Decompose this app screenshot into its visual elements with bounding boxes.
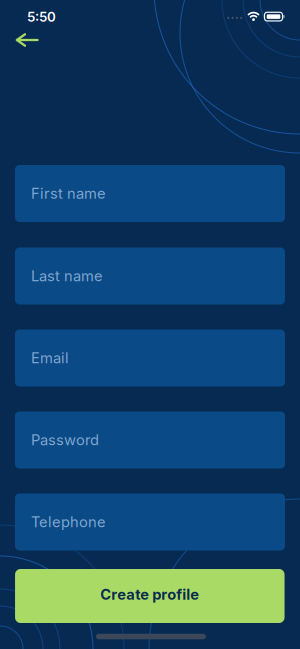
staticText: Create profile (100, 586, 199, 603)
button[interactable]: Email (15, 329, 285, 386)
button[interactable]: Password (15, 411, 285, 468)
staticText: Email (31, 349, 69, 367)
button[interactable]: First name (15, 165, 285, 222)
staticText: 5:50 (27, 9, 56, 25)
button[interactable]: Telephone (15, 493, 285, 550)
button[interactable]: Last name (15, 247, 285, 304)
staticText: Telephone (31, 513, 106, 531)
staticText: Last name (31, 267, 103, 285)
staticText: First name (31, 185, 106, 202)
button[interactable]: Create profile (15, 569, 285, 623)
staticText: Password (31, 431, 99, 449)
button[interactable] (0, 0, 300, 649)
